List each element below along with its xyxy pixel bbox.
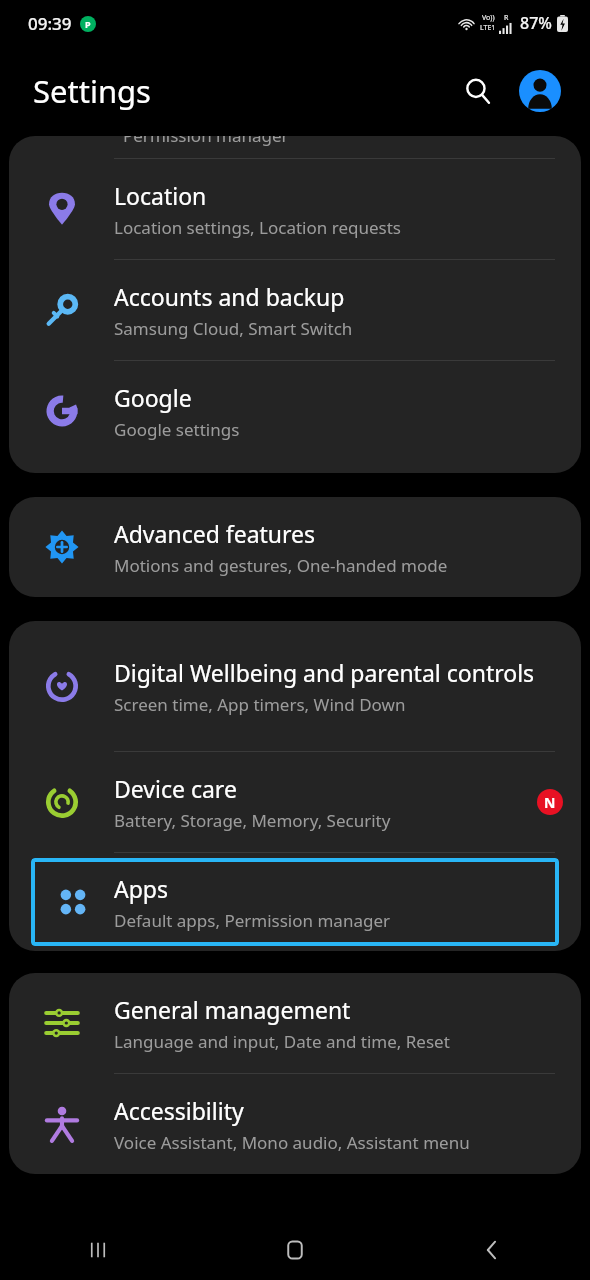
staticText: Advanced features	[114, 518, 316, 549]
staticText: Screen time, App timers, Wind Down	[114, 693, 406, 716]
staticText: N	[544, 793, 556, 812]
button[interactable]: Advanced features	[9, 497, 581, 597]
staticText: Battery, Storage, Memory, Security	[114, 809, 391, 832]
staticText: Location	[114, 180, 207, 211]
button[interactable]: Search	[452, 65, 504, 117]
staticText: Motions and gestures, One-handed mode	[114, 554, 448, 577]
staticText: P	[85, 18, 91, 30]
staticText: Device care	[114, 773, 237, 804]
staticText: Digital Wellbeing and parental controls	[114, 657, 535, 688]
staticText: Google settings	[114, 418, 240, 441]
staticText: Settings	[33, 70, 151, 112]
staticText: 87%	[520, 12, 552, 34]
staticText: R	[504, 13, 509, 23]
button[interactable]: Back	[393, 1220, 590, 1280]
staticText: Accessibility	[114, 1095, 244, 1126]
staticText: General management	[114, 994, 351, 1025]
staticText: Voice Assistant, Mono audio, Assistant m…	[114, 1131, 470, 1154]
staticText: LTE1	[480, 23, 496, 33]
staticText: Google	[114, 382, 192, 413]
staticText: 09:39	[28, 12, 72, 35]
staticText: Location settings, Location requests	[114, 216, 401, 239]
button[interactable]: Device care	[9, 752, 581, 852]
button[interactable]: Location	[9, 159, 581, 259]
button[interactable]: Recent apps	[0, 1220, 196, 1280]
staticText: Apps	[114, 873, 169, 904]
button[interactable]: Accessibility	[9, 1074, 581, 1174]
staticText: Samsung Cloud, Smart Switch	[114, 317, 353, 340]
button[interactable]: Home	[196, 1220, 393, 1280]
staticText: Default apps, Permission manager	[114, 909, 390, 932]
button[interactable]: Google	[9, 361, 581, 461]
button[interactable]: Digital Wellbeing and parental controls	[9, 621, 581, 751]
button[interactable]: General management	[9, 973, 581, 1073]
button[interactable]: Apps	[31, 858, 559, 946]
staticText: Accounts and backup	[114, 281, 345, 312]
button[interactable]: Accounts and backup	[9, 260, 581, 360]
staticText: Vo))	[482, 13, 495, 23]
staticText: Language and input, Date and time, Reset	[114, 1030, 450, 1053]
staticText: Permission manager	[123, 136, 289, 146]
button[interactable]: Account	[514, 65, 566, 117]
